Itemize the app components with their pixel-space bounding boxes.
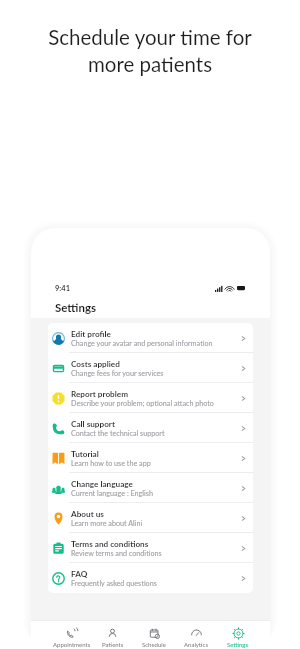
staticText: Describe your problem; optional attach p… — [71, 399, 214, 408]
button[interactable]: Settings — [217, 621, 259, 649]
staticText: Costs applied — [71, 359, 120, 369]
staticText: Change language — [71, 479, 133, 489]
staticText: Change your avatar and personal informat… — [71, 339, 213, 348]
button[interactable]: Report problem — [48, 383, 253, 413]
staticText: Change fees for your services — [71, 369, 164, 378]
button[interactable]: Terms and conditions — [48, 533, 253, 563]
staticText: Patients — [102, 641, 124, 648]
staticText: FAQ — [71, 569, 88, 579]
staticText: Schedule your time for more patients — [48, 25, 252, 76]
staticText: Call support — [71, 419, 115, 429]
staticText: Terms and conditions — [71, 539, 149, 549]
staticText: 9:41 — [55, 284, 70, 293]
staticText: About us — [71, 509, 104, 519]
button[interactable]: FAQ — [48, 563, 253, 593]
staticText: Contact the technical support — [71, 429, 165, 438]
staticText: Frequently asked questions — [71, 579, 157, 588]
staticText: Analytics — [184, 641, 209, 648]
staticText: Appointments — [53, 641, 91, 648]
button[interactable]: Analytics — [175, 621, 217, 649]
button[interactable]: Appointments — [51, 621, 92, 649]
button[interactable]: Tutorial — [48, 443, 253, 473]
button[interactable]: Patients — [92, 621, 133, 649]
staticText: Schedule — [142, 641, 166, 648]
staticText: Learn how to use the app — [71, 459, 151, 468]
button[interactable]: Schedule — [133, 621, 175, 649]
button[interactable]: Call support — [48, 413, 253, 443]
staticText: Tutorial — [71, 449, 99, 459]
staticText: Edit profile — [71, 329, 111, 339]
staticText: Learn more about Alini — [71, 519, 143, 528]
button[interactable]: Edit profile — [48, 323, 253, 353]
staticText: Report problem — [71, 389, 129, 399]
button[interactable]: About us — [48, 503, 253, 533]
button[interactable]: Change language — [48, 473, 253, 503]
button[interactable]: Costs applied — [48, 353, 253, 383]
staticText: Review terms and conditions — [71, 549, 162, 558]
staticText: Current language : English — [71, 489, 153, 498]
staticText: Settings — [55, 301, 97, 315]
staticText: Settings — [227, 641, 249, 648]
